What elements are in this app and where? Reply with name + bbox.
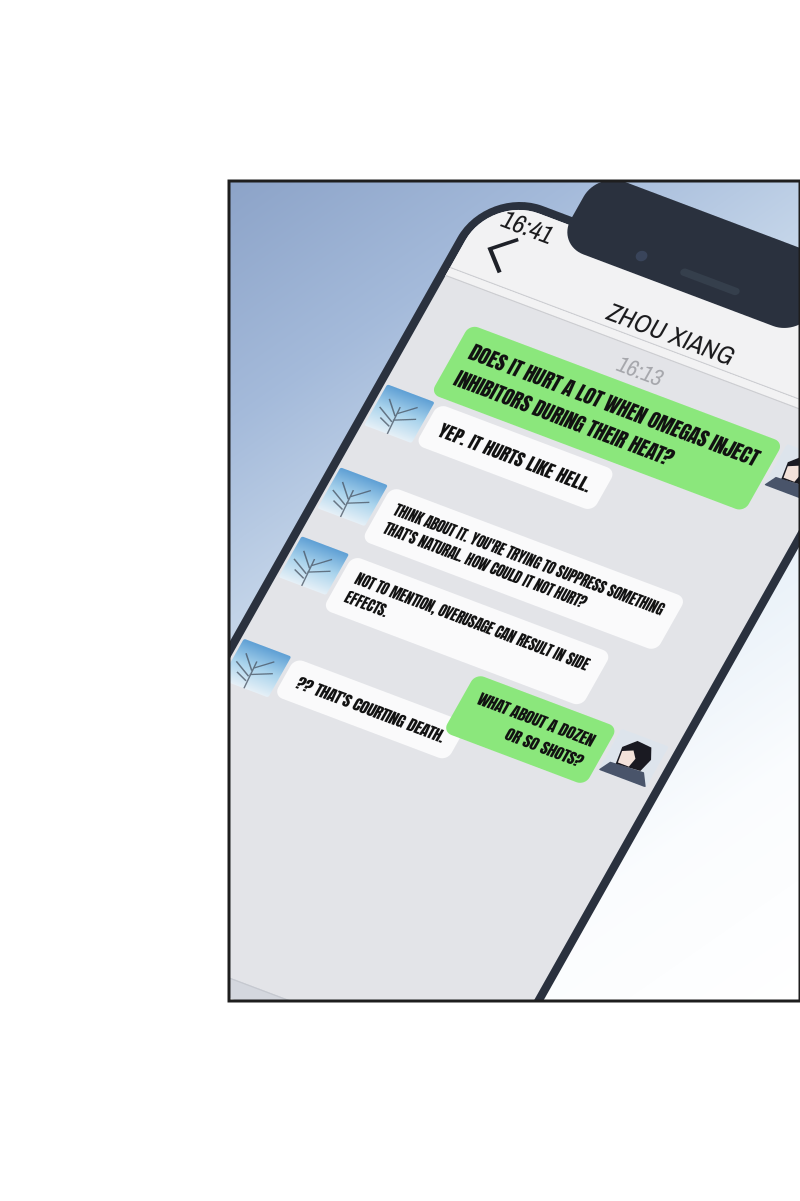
staticText: DOES IT HURT A LOT WHEN OMEGAS INJECT IN… (592, 411, 800, 504)
staticText: ?? THAT'S COURTING DEATH. (610, 991, 800, 1027)
staticText: ZHOU XIANG (748, 273, 800, 327)
button[interactable]: Back (500, 234, 601, 318)
staticText: NOT TO MENTION, OVERUSAGE CAN RESULT IN … (610, 811, 800, 875)
staticText: YEP. IT HURTS LIKE HELL. (610, 544, 800, 586)
staticText: 16:41 (534, 196, 615, 250)
staticText: THINK ABOUT IT. YOU'RE TRYING TO SUPPRES… (610, 690, 800, 754)
